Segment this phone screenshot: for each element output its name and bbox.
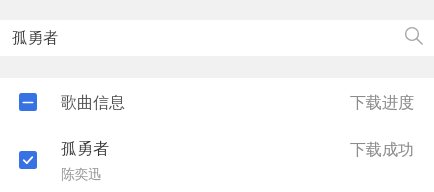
- button[interactable]: Selected: [0, 124, 434, 192]
- staticText: 陈奕迅: [61, 166, 102, 183]
- button[interactable]: Selected: [19, 151, 37, 169]
- staticText: 下载进度: [350, 93, 414, 113]
- staticText: 下载成功: [350, 140, 414, 160]
- staticText: 歌曲信息: [61, 93, 125, 113]
- button[interactable]: Search: [399, 21, 427, 49]
- staticText: 孤勇者: [12, 28, 59, 48]
- button[interactable]: Partially selected: [19, 93, 37, 111]
- staticText: 孤勇者: [61, 139, 109, 159]
- button[interactable]: Partially selected: [0, 78, 434, 124]
